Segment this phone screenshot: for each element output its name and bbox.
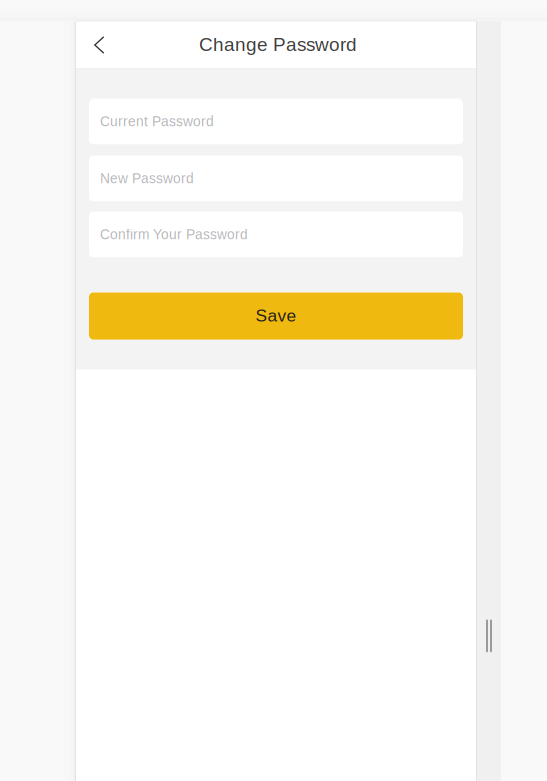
button[interactable]: New Password [89, 155, 463, 201]
button[interactable]: Back [76, 21, 123, 68]
button[interactable]: Current Password [89, 98, 463, 144]
staticText: New Password [100, 171, 194, 186]
staticText: Current Password [100, 114, 214, 129]
staticText: Confirm Your Password [100, 227, 248, 242]
staticText: Save [255, 306, 296, 325]
button[interactable]: Save [89, 292, 463, 339]
button[interactable]: Confirm Your Password [89, 211, 463, 257]
staticText: Change Password [199, 34, 357, 55]
